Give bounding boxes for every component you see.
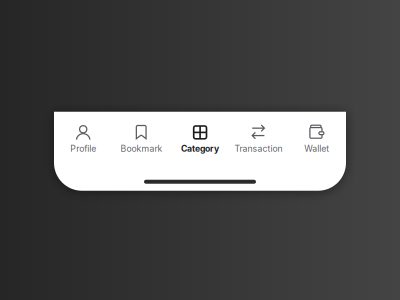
- button[interactable]: Bookmark: [112, 112, 171, 160]
- button[interactable]: Profile: [54, 112, 112, 160]
- button[interactable]: Wallet: [288, 112, 346, 160]
- staticText: Wallet: [304, 143, 329, 154]
- button[interactable]: Transaction: [229, 112, 288, 160]
- button[interactable]: Category: [171, 112, 229, 160]
- staticText: Profile: [70, 143, 96, 154]
- staticText: Transaction: [234, 143, 282, 154]
- staticText: Category: [181, 143, 219, 154]
- staticText: Bookmark: [121, 143, 163, 154]
